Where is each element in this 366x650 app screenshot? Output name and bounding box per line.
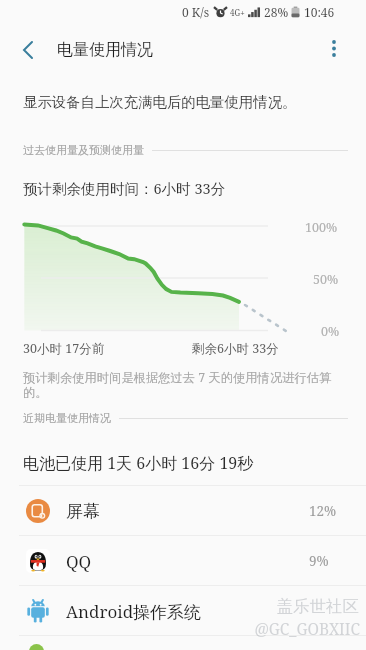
- staticText: 100%: [305, 219, 338, 236]
- staticText: 剩余6小时 33分: [192, 340, 279, 357]
- staticText: 屏幕: [66, 501, 100, 522]
- staticText: 过去使用量及预测使用量: [23, 143, 144, 157]
- button[interactable]: More options: [316, 36, 352, 60]
- staticText: 电量使用情况: [57, 40, 153, 60]
- staticText: QQ: [66, 550, 92, 573]
- staticText: 4G+: [230, 7, 245, 18]
- button[interactable]: Android操作系统: [0, 586, 366, 635]
- staticText: 50%: [313, 271, 339, 288]
- staticText: 9%: [309, 552, 329, 570]
- staticText: 30小时 17分前: [23, 340, 105, 357]
- staticText: 12%: [309, 502, 337, 520]
- staticText: 28%: [264, 4, 289, 20]
- staticText: Android操作系统: [66, 600, 202, 623]
- staticText: 0%: [321, 323, 340, 340]
- staticText: 预计剩余使用时间是根据您过去 7 天的使用情况进行估算的。: [23, 369, 335, 401]
- staticText: 0 K/s: [182, 4, 210, 20]
- button[interactable]: 屏幕: [0, 486, 366, 535]
- button[interactable]: Back: [8, 38, 48, 62]
- staticText: @GC_GOBXIIC: [199, 618, 360, 639]
- staticText: 10:46: [304, 4, 335, 20]
- staticText: 电池已使用 1天 6小时 16分 19秒: [23, 452, 254, 474]
- staticText: 近期电量使用情况: [23, 411, 111, 425]
- staticText: 预计剩余使用时间：6小时 33分: [23, 178, 226, 198]
- staticText: 显示设备自上次充满电后的电量使用情况。: [23, 93, 297, 111]
- staticText: 盖乐世社区: [199, 596, 359, 617]
- button[interactable]: QQ: [0, 536, 366, 585]
- button[interactable]: [0, 636, 366, 650]
